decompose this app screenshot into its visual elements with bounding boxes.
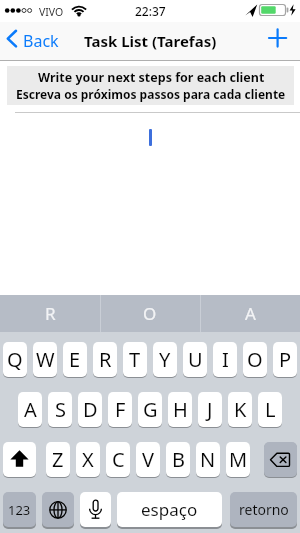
staticText: A <box>245 302 256 325</box>
staticText: Escreva os próximos passos para cada cli… <box>16 86 286 102</box>
staticText: C <box>112 446 125 473</box>
button[interactable]: K <box>228 392 252 427</box>
button[interactable]: P <box>273 342 297 377</box>
button[interactable]: X <box>76 442 100 477</box>
button[interactable]: U <box>183 342 207 377</box>
staticText: Y <box>159 346 171 373</box>
staticText: Z <box>52 446 64 473</box>
button[interactable]: D <box>78 392 102 427</box>
staticText: P <box>279 346 292 373</box>
button[interactable]: A <box>200 295 300 332</box>
staticText: B <box>172 446 185 473</box>
staticText: O <box>143 302 157 325</box>
button[interactable]: Q <box>3 342 27 377</box>
staticText: R <box>45 302 56 325</box>
staticText: Q <box>7 346 23 373</box>
button[interactable]: I <box>213 342 237 377</box>
staticText: 22:37 <box>135 3 166 19</box>
button[interactable]: F <box>108 392 132 427</box>
staticText: S <box>55 396 66 423</box>
button[interactable]: T <box>123 342 147 377</box>
staticText: D <box>83 396 98 423</box>
button[interactable]: O <box>243 342 267 377</box>
staticText: T <box>129 346 141 373</box>
button[interactable]: 123 <box>3 492 36 527</box>
staticText: M <box>229 446 248 473</box>
button[interactable]: G <box>138 392 162 427</box>
staticText: Task List (Tarefas) <box>84 31 217 51</box>
button[interactable]: retorno <box>230 492 297 527</box>
button[interactable]: O <box>100 295 200 332</box>
button[interactable]: Y <box>153 342 177 377</box>
staticText: O <box>247 346 263 373</box>
button[interactable]: E <box>63 342 87 377</box>
button[interactable]: M <box>226 442 250 477</box>
staticText: U <box>188 346 203 373</box>
staticText: retorno <box>239 500 289 519</box>
staticText: Back <box>23 30 59 52</box>
staticText: F <box>115 396 126 423</box>
button[interactable]: Back <box>18 22 64 60</box>
staticText: E <box>69 346 81 373</box>
button[interactable]: Z <box>46 442 70 477</box>
button[interactable] <box>264 442 297 477</box>
button[interactable]: W <box>33 342 57 377</box>
button[interactable]: A <box>18 392 42 427</box>
button[interactable] <box>3 442 36 477</box>
staticText: J <box>207 396 213 423</box>
staticText: G <box>143 396 158 423</box>
staticText: VIVO <box>39 5 64 19</box>
staticText: N <box>200 446 216 473</box>
button[interactable]: espaço <box>117 492 222 527</box>
button[interactable] <box>263 24 293 56</box>
button[interactable]: V <box>136 442 160 477</box>
staticText: K <box>234 396 247 423</box>
button[interactable]: C <box>106 442 130 477</box>
staticText: H <box>173 396 188 423</box>
button[interactable]: L <box>258 392 282 427</box>
button[interactable]: B <box>166 442 190 477</box>
staticText: V <box>142 446 154 473</box>
button[interactable]: H <box>168 392 192 427</box>
staticText: L <box>265 396 276 423</box>
staticText: A <box>24 396 37 423</box>
button[interactable]: S <box>48 392 72 427</box>
staticText: R <box>99 346 112 373</box>
button[interactable]: J <box>198 392 222 427</box>
staticText: I <box>222 346 229 373</box>
button[interactable] <box>42 492 74 527</box>
button[interactable]: N <box>196 442 220 477</box>
staticText: X <box>82 446 94 473</box>
staticText: Write your next steps for each client <box>38 69 265 86</box>
button[interactable]: R <box>93 342 117 377</box>
button[interactable] <box>80 492 111 527</box>
staticText: 123 <box>8 501 31 519</box>
button[interactable]: R <box>0 295 100 332</box>
staticText: W <box>36 346 55 373</box>
staticText: espaço <box>141 498 198 521</box>
